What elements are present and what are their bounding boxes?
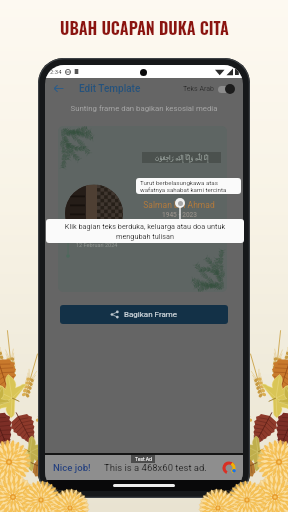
staticText: Turut berbelasungkawa atas wafatnya saha… xyxy=(140,179,237,193)
staticText: 12 Februari 2024 xyxy=(76,242,118,248)
staticText: إِنَّا لِلّٰهِ وَإِنَّآ إِلَيْهِ رَاجِعُ… xyxy=(155,154,209,162)
button[interactable]: Teks Arab xyxy=(182,84,236,94)
staticText: dan keluarganya xyxy=(159,222,199,228)
button[interactable]: Nice job! xyxy=(53,462,91,473)
staticText: This is a 468x60 test ad. xyxy=(104,462,207,473)
staticText: Teks Arab xyxy=(183,85,214,93)
staticText: Bagikan Frame xyxy=(124,310,178,319)
staticText: UBAH UCAPAN DUKA CITA xyxy=(60,16,229,40)
staticText: 2:34 xyxy=(50,68,62,75)
staticText: Test Ad xyxy=(135,456,152,462)
button[interactable]: Klik bagian teks berduka, keluarga atau … xyxy=(46,219,244,243)
button[interactable]: إِنَّا لِلّٰهِ وَإِنَّآ إِلَيْهِ رَاجِعُ… xyxy=(58,126,227,292)
button[interactable]: Back xyxy=(52,82,65,95)
staticText: Salman bin Ahmad xyxy=(143,200,215,210)
staticText: Klik bagian teks berduka, keluarga atau … xyxy=(47,222,243,240)
button[interactable]: Bagikan Frame xyxy=(60,305,228,324)
staticText: 1945 - 2023 xyxy=(162,211,197,219)
other: Ad info xyxy=(222,461,236,475)
button[interactable]: Turut berbelasungkawa atas wafatnya saha… xyxy=(136,178,241,194)
staticText: Edit Template xyxy=(79,83,141,95)
staticText: Sunting frame dan bagikan kesosial media xyxy=(45,104,243,113)
